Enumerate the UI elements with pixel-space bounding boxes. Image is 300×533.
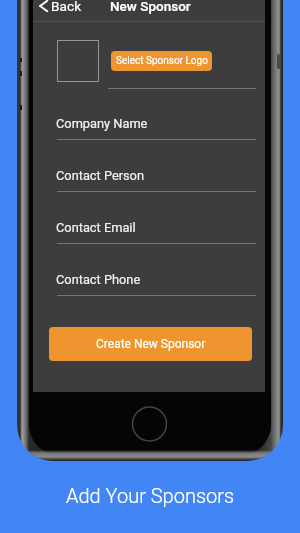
button[interactable]: Contact Email bbox=[57, 192, 256, 244]
button[interactable]: Contact Phone bbox=[57, 244, 256, 296]
staticText: Contact Email bbox=[56, 220, 136, 235]
button[interactable]: Sponsor logo placeholder bbox=[57, 40, 99, 82]
staticText: Select Sponsor Logo bbox=[116, 55, 208, 67]
button[interactable]: Company Name bbox=[57, 89, 256, 140]
staticText: Contact Person bbox=[56, 168, 144, 183]
staticText: Contact Phone bbox=[56, 272, 141, 287]
staticText: Back bbox=[51, 0, 82, 14]
button[interactable]: Contact Person bbox=[57, 140, 256, 192]
staticText: New Sponsor bbox=[110, 0, 191, 14]
staticText: Create New Sponsor bbox=[96, 337, 206, 351]
button[interactable]: Back bbox=[39, 0, 82, 16]
button[interactable]: Create New Sponsor bbox=[49, 327, 252, 361]
staticText: Company Name bbox=[56, 116, 148, 131]
staticText: Add Your Sponsors bbox=[66, 484, 235, 507]
button[interactable]: Select Sponsor Logo bbox=[111, 51, 212, 71]
